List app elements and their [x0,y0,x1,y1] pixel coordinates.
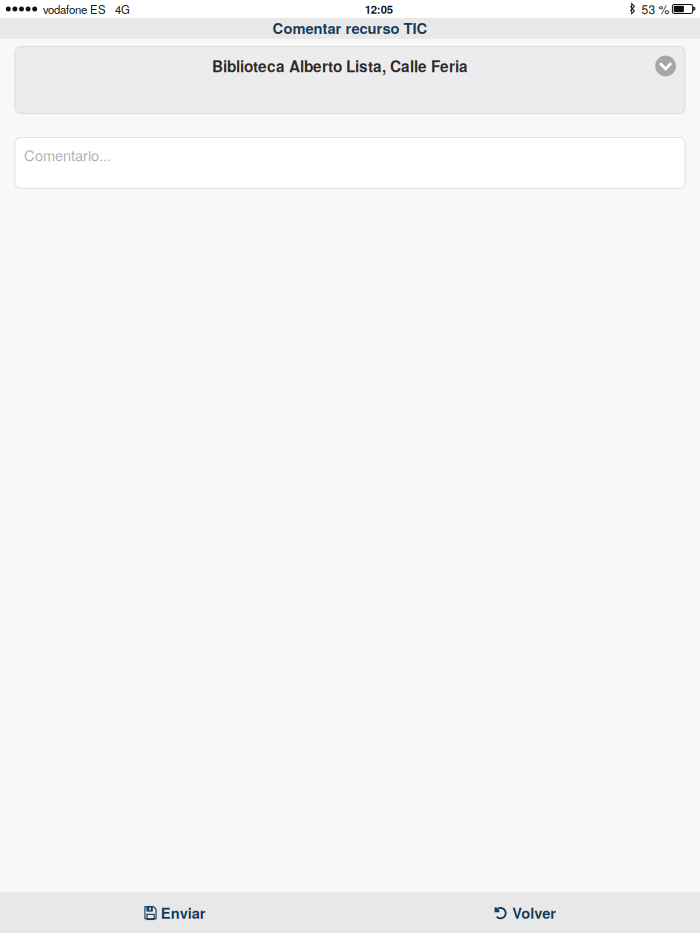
staticText: 12:05 [365,1,393,17]
button[interactable]: Biblioteca Alberto Lista, Calle Feria [15,46,685,113]
staticText: Enviar [161,902,206,923]
staticText: Volver [512,902,556,923]
staticText: Biblioteca Alberto Lista, Calle Feria [212,55,468,77]
button[interactable]: Enviar [0,892,350,933]
button[interactable]: Comentario... [15,137,685,188]
button[interactable]: Volver [350,892,700,933]
staticText: 53 % [641,0,669,18]
staticText: Comentario... [24,144,111,165]
staticText: 4G [115,1,130,17]
staticText: Comentar recurso TIC [272,17,427,38]
staticText: vodafone ES [43,1,106,17]
